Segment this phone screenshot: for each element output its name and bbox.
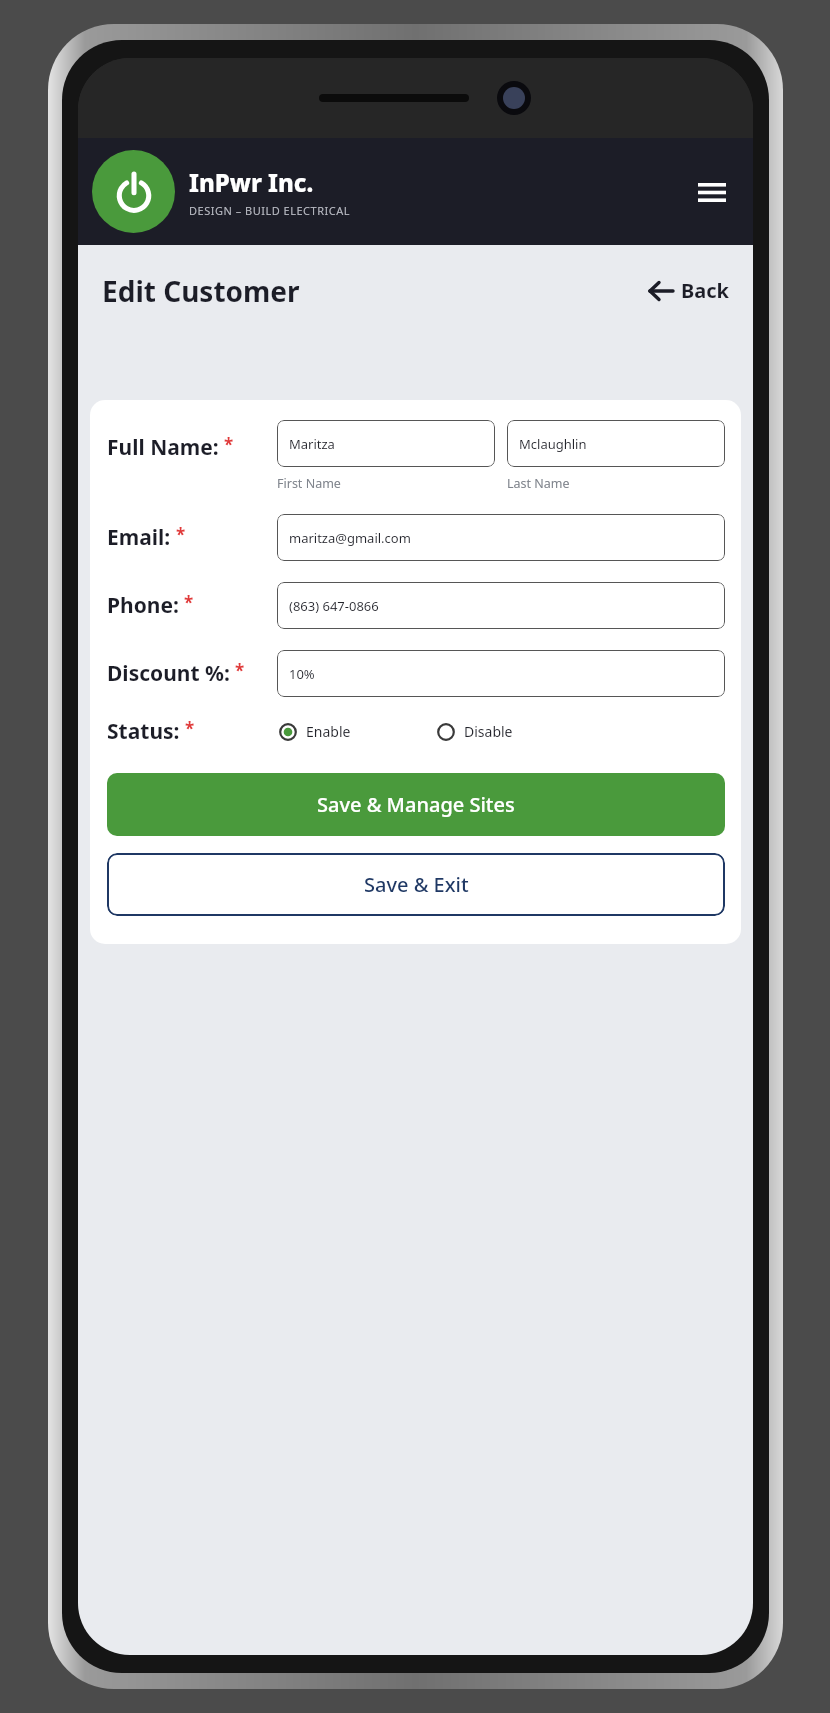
staticText: Full Name:	[107, 433, 219, 462]
staticText: 10%	[289, 665, 315, 683]
staticText: InPwr Inc.	[189, 166, 314, 199]
staticText: *	[185, 717, 195, 740]
button[interactable]: maritza@gmail.com	[277, 514, 725, 561]
staticText: Last Name	[507, 475, 570, 492]
button[interactable]: InPwr Inc. home	[92, 150, 175, 233]
button[interactable]: Disable	[435, 717, 515, 746]
staticText: Mclaughlin	[519, 435, 587, 453]
staticText: Enable	[306, 722, 351, 741]
staticText: Save & Exit	[364, 871, 469, 898]
staticText: Phone:	[107, 591, 179, 620]
staticText: Disable	[464, 722, 513, 741]
button[interactable]: Save & Exit	[107, 853, 725, 916]
staticText: Email:	[107, 523, 171, 552]
staticText: (863) 647-0866	[289, 597, 379, 615]
button[interactable]: Save & Manage Sites	[107, 773, 725, 836]
button[interactable]: Mclaughlin	[507, 420, 725, 467]
staticText: DESIGN – BUILD ELECTRICAL	[189, 203, 350, 218]
staticText: Edit Customer	[102, 272, 300, 310]
staticText: First Name	[277, 475, 341, 492]
button[interactable]: Back	[641, 269, 735, 312]
staticText: Back	[681, 277, 729, 304]
staticText: Discount %:	[107, 659, 230, 688]
staticText: Maritza	[289, 435, 335, 453]
button[interactable]: Maritza	[277, 420, 495, 467]
staticText: *	[235, 659, 245, 682]
button[interactable]: Enable	[277, 717, 353, 746]
button[interactable]: 10%	[277, 650, 725, 697]
button[interactable]: Menu	[687, 167, 737, 217]
staticText: Status:	[107, 717, 180, 746]
staticText: Save & Manage Sites	[317, 791, 515, 818]
staticText: *	[184, 591, 194, 614]
staticText: *	[176, 523, 186, 546]
staticText: *	[224, 433, 234, 456]
staticText: maritza@gmail.com	[289, 529, 411, 547]
button[interactable]: (863) 647-0866	[277, 582, 725, 629]
